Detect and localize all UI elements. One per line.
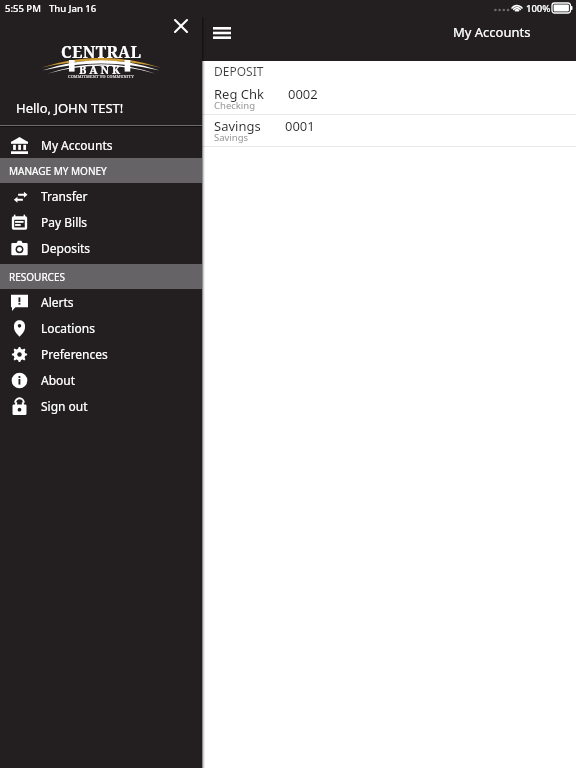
button[interactable]: My Accounts [0, 132, 202, 158]
staticText: My Accounts [41, 137, 113, 153]
button[interactable]: Deposits [0, 235, 202, 261]
staticText: Deposits [41, 240, 91, 256]
staticText: 0002 [288, 85, 318, 103]
staticText: Preferences [41, 346, 108, 362]
staticText: Hello, JOHN TEST! [16, 99, 124, 117]
staticText: Savings [214, 131, 249, 144]
button[interactable]: Alerts [0, 289, 202, 315]
button[interactable]: Open navigation menu [203, 14, 240, 51]
staticText: BANK [79, 62, 124, 77]
staticText: COMMITMENT TO COMMUNITY [68, 74, 134, 79]
button[interactable]: Preferences [0, 341, 202, 367]
button[interactable]: About [0, 367, 202, 393]
button[interactable]: Sign out [0, 393, 202, 419]
staticText: 5:55 PM [5, 2, 41, 15]
staticText: My Accounts [453, 23, 531, 41]
staticText: Locations [41, 320, 95, 336]
staticText: 0001 [285, 117, 315, 135]
staticText: About [41, 372, 76, 388]
staticText: Pay Bills [41, 214, 88, 230]
button[interactable]: Locations [0, 315, 202, 341]
staticText: Checking [214, 99, 256, 112]
staticText: Alerts [41, 294, 74, 310]
button[interactable]: Pay Bills [0, 209, 202, 235]
staticText: Sign out [41, 398, 88, 414]
staticText: CENTRAL [61, 41, 142, 63]
button[interactable]: Savings [0, 115, 576, 147]
staticText: Reg Chk [214, 85, 264, 103]
button[interactable]: Close navigation menu [164, 9, 197, 42]
staticText: Thu Jan 16 [49, 2, 97, 15]
staticText: 100% [526, 2, 551, 15]
button[interactable]: Reg Chk [0, 83, 576, 115]
button[interactable]: Transfer [0, 183, 202, 209]
staticText: DEPOSIT [214, 63, 264, 79]
staticText: Transfer [41, 188, 88, 204]
staticText: Savings [214, 117, 261, 135]
staticText: MANAGE MY MONEY [9, 164, 107, 178]
staticText: RESOURCES [9, 270, 65, 284]
